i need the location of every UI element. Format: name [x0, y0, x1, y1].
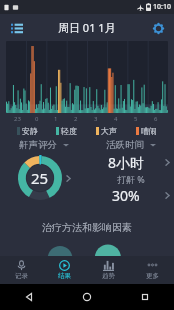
button[interactable]: 趋势 — [86, 256, 130, 284]
staticText: 30% — [112, 186, 140, 205]
staticText: 8小时 — [108, 153, 145, 172]
button[interactable]: 25 — [17, 155, 63, 201]
staticText: 鼾声评分 — [19, 139, 57, 151]
button[interactable]: 鼾声评分 — [19, 139, 69, 151]
button[interactable]: 嘈闹 — [126, 126, 166, 136]
staticText: 更多 — [146, 272, 159, 280]
button[interactable]: 8小时 — [87, 153, 174, 172]
staticText: 大声 — [101, 126, 117, 136]
staticText: 轻度 — [61, 126, 77, 136]
button[interactable]: 更多 — [130, 256, 174, 284]
button[interactable]: Back — [0, 284, 58, 310]
staticText: 2 — [74, 115, 78, 123]
button[interactable]: Menu — [7, 18, 27, 38]
button[interactable]: 记录 — [0, 256, 43, 284]
staticText: 周日 01 1月 — [58, 20, 116, 35]
button[interactable]: 大声 — [86, 126, 126, 136]
staticText: 活跃时间 — [106, 139, 144, 151]
staticText: 嘈闹 — [141, 126, 157, 136]
staticText: 记录 — [15, 272, 28, 280]
staticText: 23 — [14, 115, 21, 123]
staticText: 4 — [114, 115, 118, 123]
staticText: 结果 — [58, 272, 71, 280]
staticText: 0 — [35, 115, 39, 123]
staticText: 3 — [94, 115, 98, 123]
button[interactable]: Settings — [148, 18, 168, 38]
button[interactable] — [6, 41, 168, 113]
staticText: 治疗方法和影响因素 — [42, 221, 132, 234]
button[interactable]: 结果 — [43, 256, 86, 284]
staticText: 打鼾 % — [117, 173, 145, 185]
button[interactable]: 30% — [87, 186, 174, 205]
button[interactable]: Recents — [116, 284, 174, 310]
button[interactable]: Home — [58, 284, 116, 310]
button[interactable]: 活跃时间 — [106, 139, 156, 151]
staticText: 安静 — [22, 126, 38, 136]
button[interactable]: 安静 — [8, 126, 47, 136]
staticText: 1 — [54, 115, 58, 123]
staticText: 10:10 — [153, 2, 171, 12]
button[interactable]: 治疗方法和影响因素 — [0, 221, 174, 234]
staticText: 6 — [154, 115, 158, 123]
button[interactable]: 轻度 — [47, 126, 86, 136]
staticText: 趋势 — [102, 272, 115, 280]
staticText: 25 — [31, 168, 49, 188]
staticText: 5 — [134, 115, 138, 123]
